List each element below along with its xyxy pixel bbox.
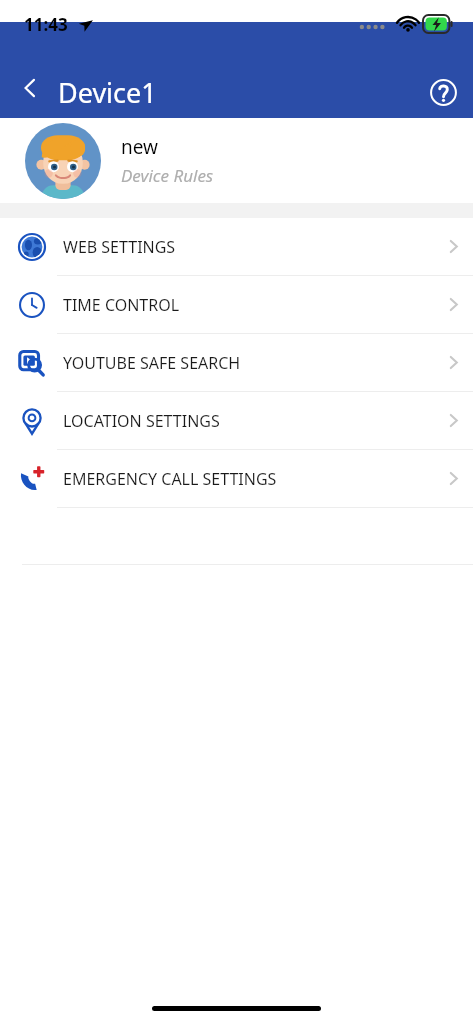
staticText: Device1: [58, 74, 157, 111]
staticText: YOUTUBE SAFE SEARCH: [63, 352, 241, 374]
staticText: new: [121, 134, 159, 160]
staticText: 11:43: [24, 13, 68, 36]
staticText: WEB SETTINGS: [63, 236, 176, 258]
button[interactable]: Help: [425, 74, 461, 110]
staticText: EMERGENCY CALL SETTINGS: [63, 468, 277, 490]
button[interactable]: TIME CONTROL: [0, 276, 473, 333]
button[interactable]: EMERGENCY CALL SETTINGS: [0, 450, 473, 507]
staticText: LOCATION SETTINGS: [63, 410, 220, 432]
staticText: Device Rules: [121, 164, 214, 187]
button[interactable]: YOUTUBE SAFE SEARCH: [0, 334, 473, 391]
button[interactable]: new: [0, 118, 473, 203]
button[interactable]: WEB SETTINGS: [0, 218, 473, 275]
button[interactable]: Back: [8, 66, 52, 110]
staticText: TIME CONTROL: [63, 294, 180, 316]
button[interactable]: LOCATION SETTINGS: [0, 392, 473, 449]
